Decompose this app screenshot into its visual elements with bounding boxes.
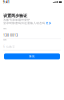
staticText: 6 位数字 bbox=[3, 45, 15, 48]
staticText: 验证码 bbox=[3, 39, 6, 41]
staticText: 继续 bbox=[29, 55, 35, 58]
staticText: 138 0013 bbox=[3, 34, 18, 37]
button[interactable]: 更多 bbox=[46, 22, 52, 25]
button[interactable]: 继续 bbox=[4, 53, 60, 59]
staticText: 9:41 bbox=[3, 0, 10, 4]
button[interactable]: 手机号 bbox=[0, 28, 64, 39]
staticText: 更多 bbox=[46, 22, 52, 25]
staticText: 手机号 bbox=[3, 28, 6, 29]
button[interactable]: 验证码 bbox=[0, 39, 64, 50]
staticText: 为账号添加额外保护 bbox=[3, 18, 30, 22]
staticText: 设置两步验证 bbox=[3, 13, 27, 18]
staticText: 登录时除密码外还需输入动态码 bbox=[3, 22, 45, 25]
